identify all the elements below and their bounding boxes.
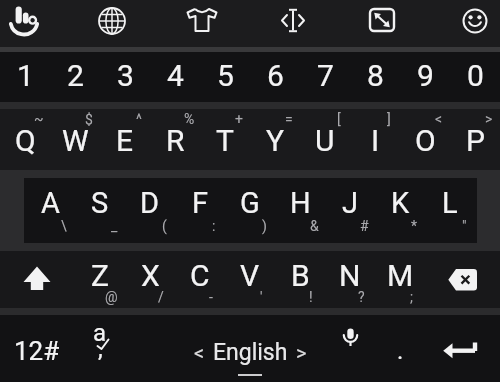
button[interactable] <box>375 315 425 382</box>
button[interactable] <box>425 251 500 311</box>
staticText: C <box>190 258 210 293</box>
button[interactable] <box>0 251 75 311</box>
button[interactable] <box>300 106 350 170</box>
button[interactable] <box>166 0 250 48</box>
button[interactable] <box>75 315 125 382</box>
staticText: [ <box>337 111 341 127</box>
button[interactable] <box>400 106 450 170</box>
staticText: 9 <box>417 58 434 93</box>
button[interactable] <box>75 251 125 311</box>
staticText: . <box>397 337 404 365</box>
staticText: ' <box>260 289 263 305</box>
button[interactable] <box>375 170 425 251</box>
staticText: 5 <box>217 58 234 93</box>
staticText: 4 <box>167 58 184 93</box>
staticText: B <box>291 258 310 293</box>
button[interactable] <box>249 0 333 48</box>
button[interactable] <box>125 251 175 311</box>
staticText: L <box>442 186 458 220</box>
button[interactable] <box>100 106 150 170</box>
staticText: English <box>213 339 288 366</box>
staticText: X <box>141 258 160 293</box>
staticText: W <box>62 123 89 158</box>
staticText: F <box>192 186 209 220</box>
button[interactable] <box>0 0 84 48</box>
button[interactable] <box>275 251 325 311</box>
button[interactable] <box>415 0 499 48</box>
staticText: ) <box>262 218 267 234</box>
button[interactable] <box>275 170 325 251</box>
staticText: * <box>411 218 418 234</box>
button[interactable] <box>175 170 225 251</box>
button[interactable] <box>0 106 50 170</box>
button[interactable] <box>350 106 400 170</box>
staticText: A <box>41 186 60 220</box>
button[interactable] <box>325 170 375 251</box>
button[interactable] <box>325 251 375 311</box>
button[interactable] <box>425 170 475 251</box>
button[interactable] <box>250 106 300 170</box>
staticText: ~ <box>34 111 44 127</box>
staticText: < <box>435 111 443 127</box>
button[interactable] <box>332 0 416 48</box>
staticText: J <box>342 186 359 220</box>
staticText: # <box>360 218 369 234</box>
staticText: D <box>140 186 160 220</box>
staticText: / <box>158 289 164 305</box>
button[interactable] <box>250 52 300 100</box>
staticText: _ <box>111 218 118 234</box>
staticText: I <box>371 123 380 158</box>
button[interactable] <box>425 315 500 382</box>
staticText: Y <box>266 123 285 158</box>
staticText: : <box>212 218 216 234</box>
button[interactable] <box>75 170 125 251</box>
staticText: 1 <box>17 58 34 93</box>
button[interactable] <box>0 315 75 382</box>
staticText: > <box>296 341 307 364</box>
staticText: ^ <box>136 111 142 127</box>
button[interactable] <box>0 52 50 100</box>
button[interactable] <box>300 52 350 100</box>
button[interactable] <box>150 52 200 100</box>
button[interactable] <box>350 52 400 100</box>
button[interactable] <box>100 52 150 100</box>
button[interactable] <box>50 52 100 100</box>
staticText: 0 <box>467 58 484 93</box>
button[interactable] <box>400 52 450 100</box>
staticText: 12# <box>14 336 60 366</box>
staticText: P <box>466 123 485 158</box>
button[interactable] <box>50 106 100 170</box>
button[interactable] <box>83 0 167 48</box>
button[interactable] <box>450 106 500 170</box>
staticText: 2 <box>67 58 84 93</box>
staticText: O <box>415 123 436 158</box>
staticText: < <box>194 341 205 364</box>
button[interactable] <box>375 251 425 311</box>
staticText: E <box>116 123 134 158</box>
button[interactable] <box>125 315 325 382</box>
button[interactable] <box>450 52 500 100</box>
button[interactable] <box>325 315 375 382</box>
button[interactable] <box>25 170 75 251</box>
button[interactable] <box>175 251 225 311</box>
button[interactable] <box>225 170 275 251</box>
staticText: R <box>166 123 185 158</box>
staticText: \ <box>61 218 67 234</box>
staticText: G <box>240 186 260 220</box>
staticText: M <box>387 258 414 293</box>
button[interactable] <box>200 106 250 170</box>
staticText: S <box>91 186 109 220</box>
staticText: ( <box>162 218 167 234</box>
staticText: K <box>391 186 410 220</box>
button[interactable] <box>125 170 175 251</box>
staticText: a <box>93 319 107 347</box>
staticText: + <box>235 111 243 127</box>
staticText: @ <box>105 289 118 305</box>
staticText: & <box>310 218 319 234</box>
staticText: > <box>485 111 493 127</box>
button[interactable] <box>150 106 200 170</box>
button[interactable] <box>225 251 275 311</box>
staticText: 6 <box>267 58 284 93</box>
staticText: - <box>209 289 213 305</box>
button[interactable] <box>200 52 250 100</box>
